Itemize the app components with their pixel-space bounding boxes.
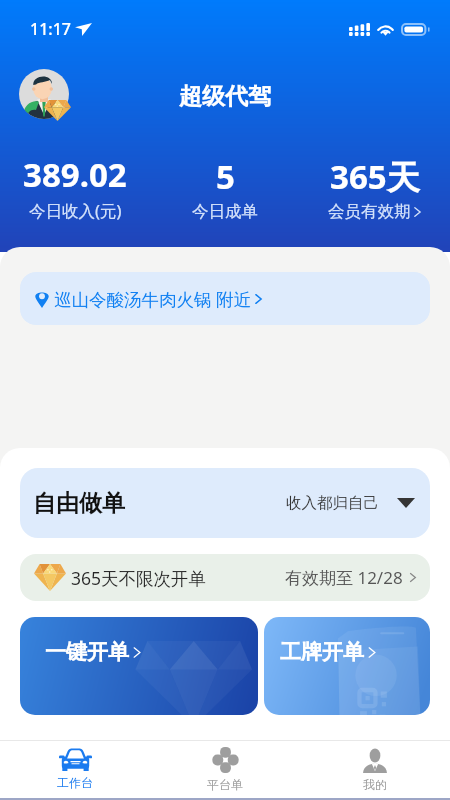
button[interactable]: 我的 <box>300 741 450 798</box>
staticText: 有效期至 12/28 <box>285 566 403 589</box>
button[interactable]: 工作台 <box>0 741 150 798</box>
staticText: 自由做单 <box>33 489 125 518</box>
staticText: 工牌开单 <box>280 639 364 665</box>
button[interactable]: 自由做单 <box>20 468 430 538</box>
staticText: 收入都归自己 <box>286 493 379 513</box>
button[interactable]: 365天不限次开单 <box>20 554 430 601</box>
staticText: 超级代驾 <box>179 82 271 111</box>
button[interactable]: 工牌开单 <box>264 617 430 715</box>
button[interactable]: Profile <box>19 69 71 121</box>
staticText: 365天不限次开单 <box>71 566 207 590</box>
staticText: 今日成单 <box>192 201 258 222</box>
staticText: 会员有效期 <box>328 201 411 222</box>
button[interactable]: 365天 <box>300 154 450 222</box>
staticText: 平台单 <box>207 777 243 792</box>
staticText: 365天 <box>330 154 420 199</box>
button[interactable]: 平台单 <box>150 741 300 798</box>
staticText: 389.02 <box>23 152 127 197</box>
staticText: 11:17 <box>30 18 71 40</box>
button[interactable]: 389.02 <box>0 152 150 222</box>
button[interactable]: 5 <box>150 154 300 222</box>
staticText: 巡山令酸汤牛肉火锅 附近 <box>54 287 252 311</box>
staticText: 今日收入(元) <box>29 199 122 222</box>
staticText: 5 <box>216 154 235 199</box>
staticText: 一键开单 <box>45 639 129 665</box>
staticText: 我的 <box>363 777 387 792</box>
staticText: 工作台 <box>57 775 93 790</box>
button[interactable]: 巡山令酸汤牛肉火锅 附近 <box>20 272 430 325</box>
button[interactable]: 一键开单 <box>20 617 258 715</box>
